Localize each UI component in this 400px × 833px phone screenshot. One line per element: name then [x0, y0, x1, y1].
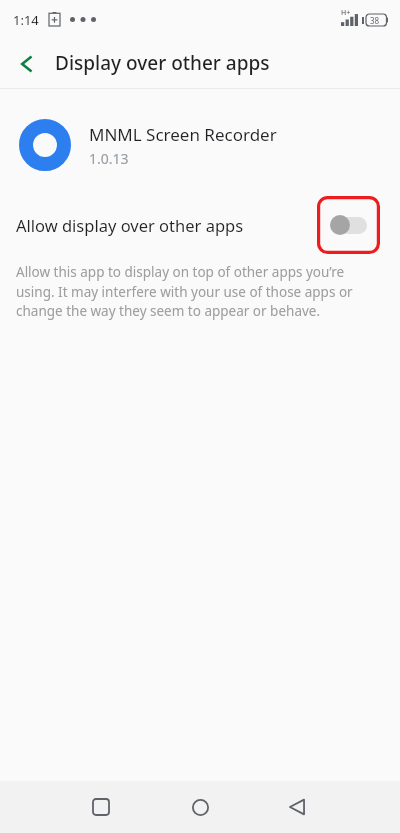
staticText: MNML Screen Recorder — [89, 123, 277, 146]
staticText: Allow display over other apps — [16, 214, 244, 236]
staticText: Allow this app to display on top of othe… — [16, 263, 378, 320]
button[interactable]: Recent apps — [77, 783, 125, 831]
button[interactable]: Home — [176, 783, 224, 831]
button[interactable]: Back — [273, 783, 321, 831]
button[interactable]: Back — [10, 47, 44, 81]
staticText: H+ — [341, 8, 351, 18]
button[interactable]: Allow display over other apps — [0, 196, 400, 254]
button[interactable] — [329, 212, 369, 238]
staticText: 1:14 — [13, 11, 39, 29]
staticText: 38 — [370, 15, 380, 26]
staticText: 1.0.13 — [89, 149, 129, 168]
staticText: Display over other apps — [55, 50, 270, 76]
